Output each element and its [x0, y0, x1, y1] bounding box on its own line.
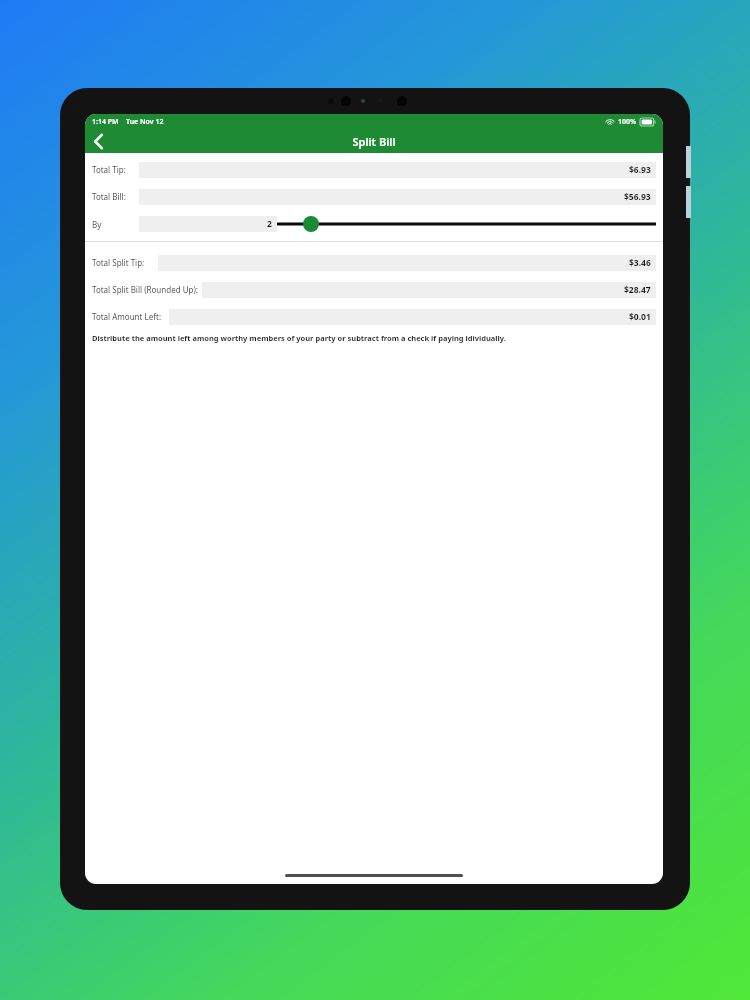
button[interactable]: Total Tip: — [92, 159, 656, 180]
staticText: Split Bill — [352, 134, 396, 149]
staticText: Total Bill: — [92, 191, 126, 202]
staticText: Total Split Bill (Rounded Up): — [92, 284, 198, 295]
staticText: $28.47 — [624, 284, 651, 296]
staticText: Total Tip: — [92, 164, 126, 175]
button[interactable]: Total Bill: — [92, 186, 656, 207]
staticText: By — [92, 219, 102, 230]
staticText: Total Split Tip: — [92, 257, 145, 268]
button[interactable]: Total Amount Left: — [92, 306, 656, 327]
staticText: 2 — [267, 218, 272, 230]
button[interactable]: Total Split Bill (Rounded Up): — [92, 279, 656, 300]
staticText: 100% — [618, 117, 637, 127]
staticText: $3.46 — [629, 257, 651, 269]
staticText: $56.93 — [624, 191, 651, 203]
staticText: $0.01 — [629, 311, 651, 323]
staticText: Total Amount Left: — [92, 311, 162, 322]
staticText: $6.93 — [629, 164, 651, 176]
button[interactable]: By — [92, 212, 656, 236]
staticText: Distribute the amount left among worthy … — [92, 333, 506, 343]
button[interactable]: Back — [85, 129, 111, 153]
staticText: Tue Nov 12 — [126, 117, 164, 127]
button[interactable]: Total Split Tip: — [92, 252, 656, 273]
staticText: 1:14 PM — [92, 117, 119, 127]
